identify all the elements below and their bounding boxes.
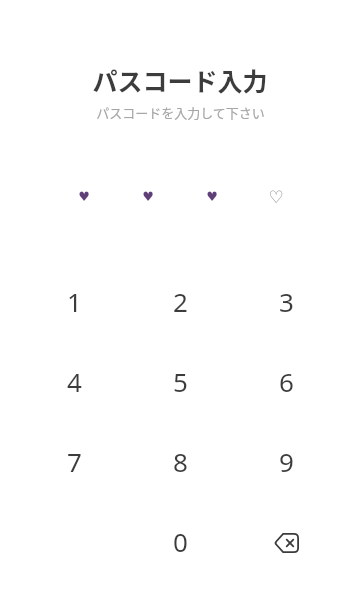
button[interactable]: Backspace [233,501,339,581]
staticText: 8 [173,444,188,479]
staticText: ♥ [206,189,218,204]
button[interactable]: 3 [233,261,339,341]
staticText: 1 [67,284,82,319]
staticText: 3 [279,284,294,319]
staticText: ♥ [142,189,154,204]
button[interactable]: 8 [127,421,233,501]
staticText: 7 [67,444,82,479]
button[interactable]: 7 [21,421,127,501]
staticText: パスコードを入力して下さい [96,103,265,122]
button[interactable]: 0 [127,501,233,581]
staticText: パスコード入力 [92,62,268,98]
staticText: 2 [173,284,188,319]
staticText: 9 [279,444,294,479]
staticText: 4 [67,364,82,399]
button[interactable]: 9 [233,421,339,501]
staticText: 6 [279,364,294,399]
staticText: 5 [173,364,188,399]
button[interactable]: 5 [127,341,233,421]
button[interactable]: 1 [21,261,127,341]
button[interactable]: 2 [127,261,233,341]
staticText: ♥ [78,189,90,204]
staticText: 0 [173,524,188,559]
button[interactable]: 6 [233,341,339,421]
staticText: ♡ [268,187,284,207]
button[interactable]: 4 [21,341,127,421]
